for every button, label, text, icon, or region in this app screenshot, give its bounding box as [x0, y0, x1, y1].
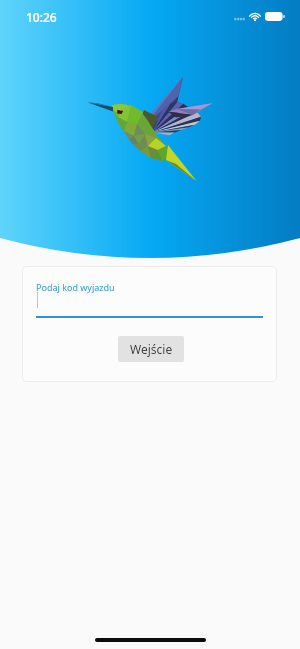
button[interactable]: Wejście: [118, 336, 184, 362]
staticText: 10:26: [26, 9, 57, 25]
staticText: Wejście: [130, 341, 173, 357]
staticText: Podaj kod wyjazdu: [36, 281, 115, 293]
